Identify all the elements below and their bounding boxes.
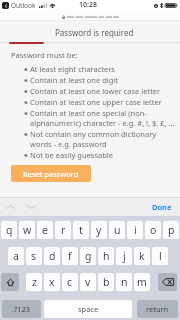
button[interactable]: i — [127, 221, 143, 239]
button[interactable]: Done — [144, 199, 180, 215]
staticText: o — [150, 223, 157, 237]
button[interactable]: l — [152, 247, 168, 265]
staticText: Contain at least one special (non- alpha… — [30, 108, 175, 128]
staticText: f — [68, 249, 72, 263]
button[interactable]: k — [134, 247, 150, 265]
button[interactable]: j — [116, 247, 132, 265]
button[interactable]: z — [26, 273, 42, 291]
button[interactable]: c — [62, 273, 78, 291]
staticText: v — [85, 275, 91, 289]
button[interactable]: .?123 — [2, 300, 41, 318]
button[interactable]: o — [145, 221, 161, 239]
staticText: Outlook — [11, 1, 36, 10]
staticText: d — [49, 249, 56, 263]
staticText: b — [103, 275, 110, 289]
staticText: h — [103, 249, 110, 263]
staticText: g — [85, 249, 92, 263]
button[interactable]: f — [62, 247, 78, 265]
button[interactable]: r — [55, 221, 71, 239]
button[interactable]: m — [134, 273, 150, 291]
button[interactable]: p — [163, 221, 179, 239]
button[interactable]: a — [8, 247, 24, 265]
staticText: At least eight characters — [30, 64, 115, 74]
staticText: r — [61, 223, 66, 237]
staticText: c — [67, 275, 73, 289]
staticText: i — [134, 223, 137, 237]
staticText: j — [123, 249, 126, 263]
staticText: q — [6, 223, 13, 237]
staticText: .?123 — [12, 304, 31, 314]
button[interactable]: Previous field — [3, 200, 17, 214]
staticText: Not contain any common dictionary words … — [30, 129, 157, 149]
staticText: p — [168, 223, 175, 237]
button[interactable]: t — [73, 221, 89, 239]
staticText: x — [49, 275, 55, 289]
staticText: k — [139, 249, 145, 263]
button[interactable]: Reset password — [11, 165, 91, 182]
button[interactable]: Backspace — [158, 273, 177, 291]
staticText: Contain at least one upper case letter — [30, 97, 162, 107]
button[interactable]: g — [80, 247, 96, 265]
staticText: t — [79, 223, 83, 237]
button[interactable]: b — [98, 273, 114, 291]
staticText: s — [31, 249, 37, 263]
staticText: w — [23, 223, 32, 237]
button[interactable]: d — [44, 247, 60, 265]
staticText: n — [121, 275, 128, 289]
staticText: m — [137, 275, 147, 289]
button[interactable]: Next field — [24, 200, 38, 214]
staticText: Reset password — [23, 169, 79, 179]
button[interactable]: Back to Outlook — [2, 2, 9, 9]
button[interactable]: e — [37, 221, 53, 239]
staticText: Password is required — [55, 27, 134, 38]
button[interactable]: s — [26, 247, 42, 265]
staticText: Contain at least one lower case letter — [30, 86, 161, 96]
button[interactable]: space — [44, 300, 132, 318]
button[interactable]: return — [137, 300, 178, 318]
button[interactable]: u — [109, 221, 125, 239]
button[interactable]: x — [44, 273, 60, 291]
staticText: Password must be: — [11, 50, 78, 60]
button[interactable]: n — [116, 273, 132, 291]
staticText: space — [78, 304, 99, 314]
button[interactable]: v — [80, 273, 96, 291]
staticText: Done — [152, 202, 172, 212]
button[interactable]: Shift — [1, 273, 19, 291]
button[interactable]: q — [1, 221, 17, 239]
button[interactable]: Address bar — [62, 15, 119, 19]
staticText: 10:28 — [79, 0, 97, 10]
staticText: a — [13, 249, 19, 263]
staticText: l — [159, 249, 162, 263]
staticText: z — [32, 275, 37, 289]
button[interactable]: h — [98, 247, 114, 265]
staticText: e — [42, 223, 48, 237]
staticText: Not be easily guessable — [30, 150, 114, 160]
staticText: u — [114, 223, 121, 237]
staticText: return — [146, 304, 169, 314]
button[interactable]: y — [91, 221, 107, 239]
staticText: Contain at least one digit — [30, 75, 118, 85]
staticText: y — [96, 223, 102, 237]
button[interactable]: w — [19, 221, 35, 239]
